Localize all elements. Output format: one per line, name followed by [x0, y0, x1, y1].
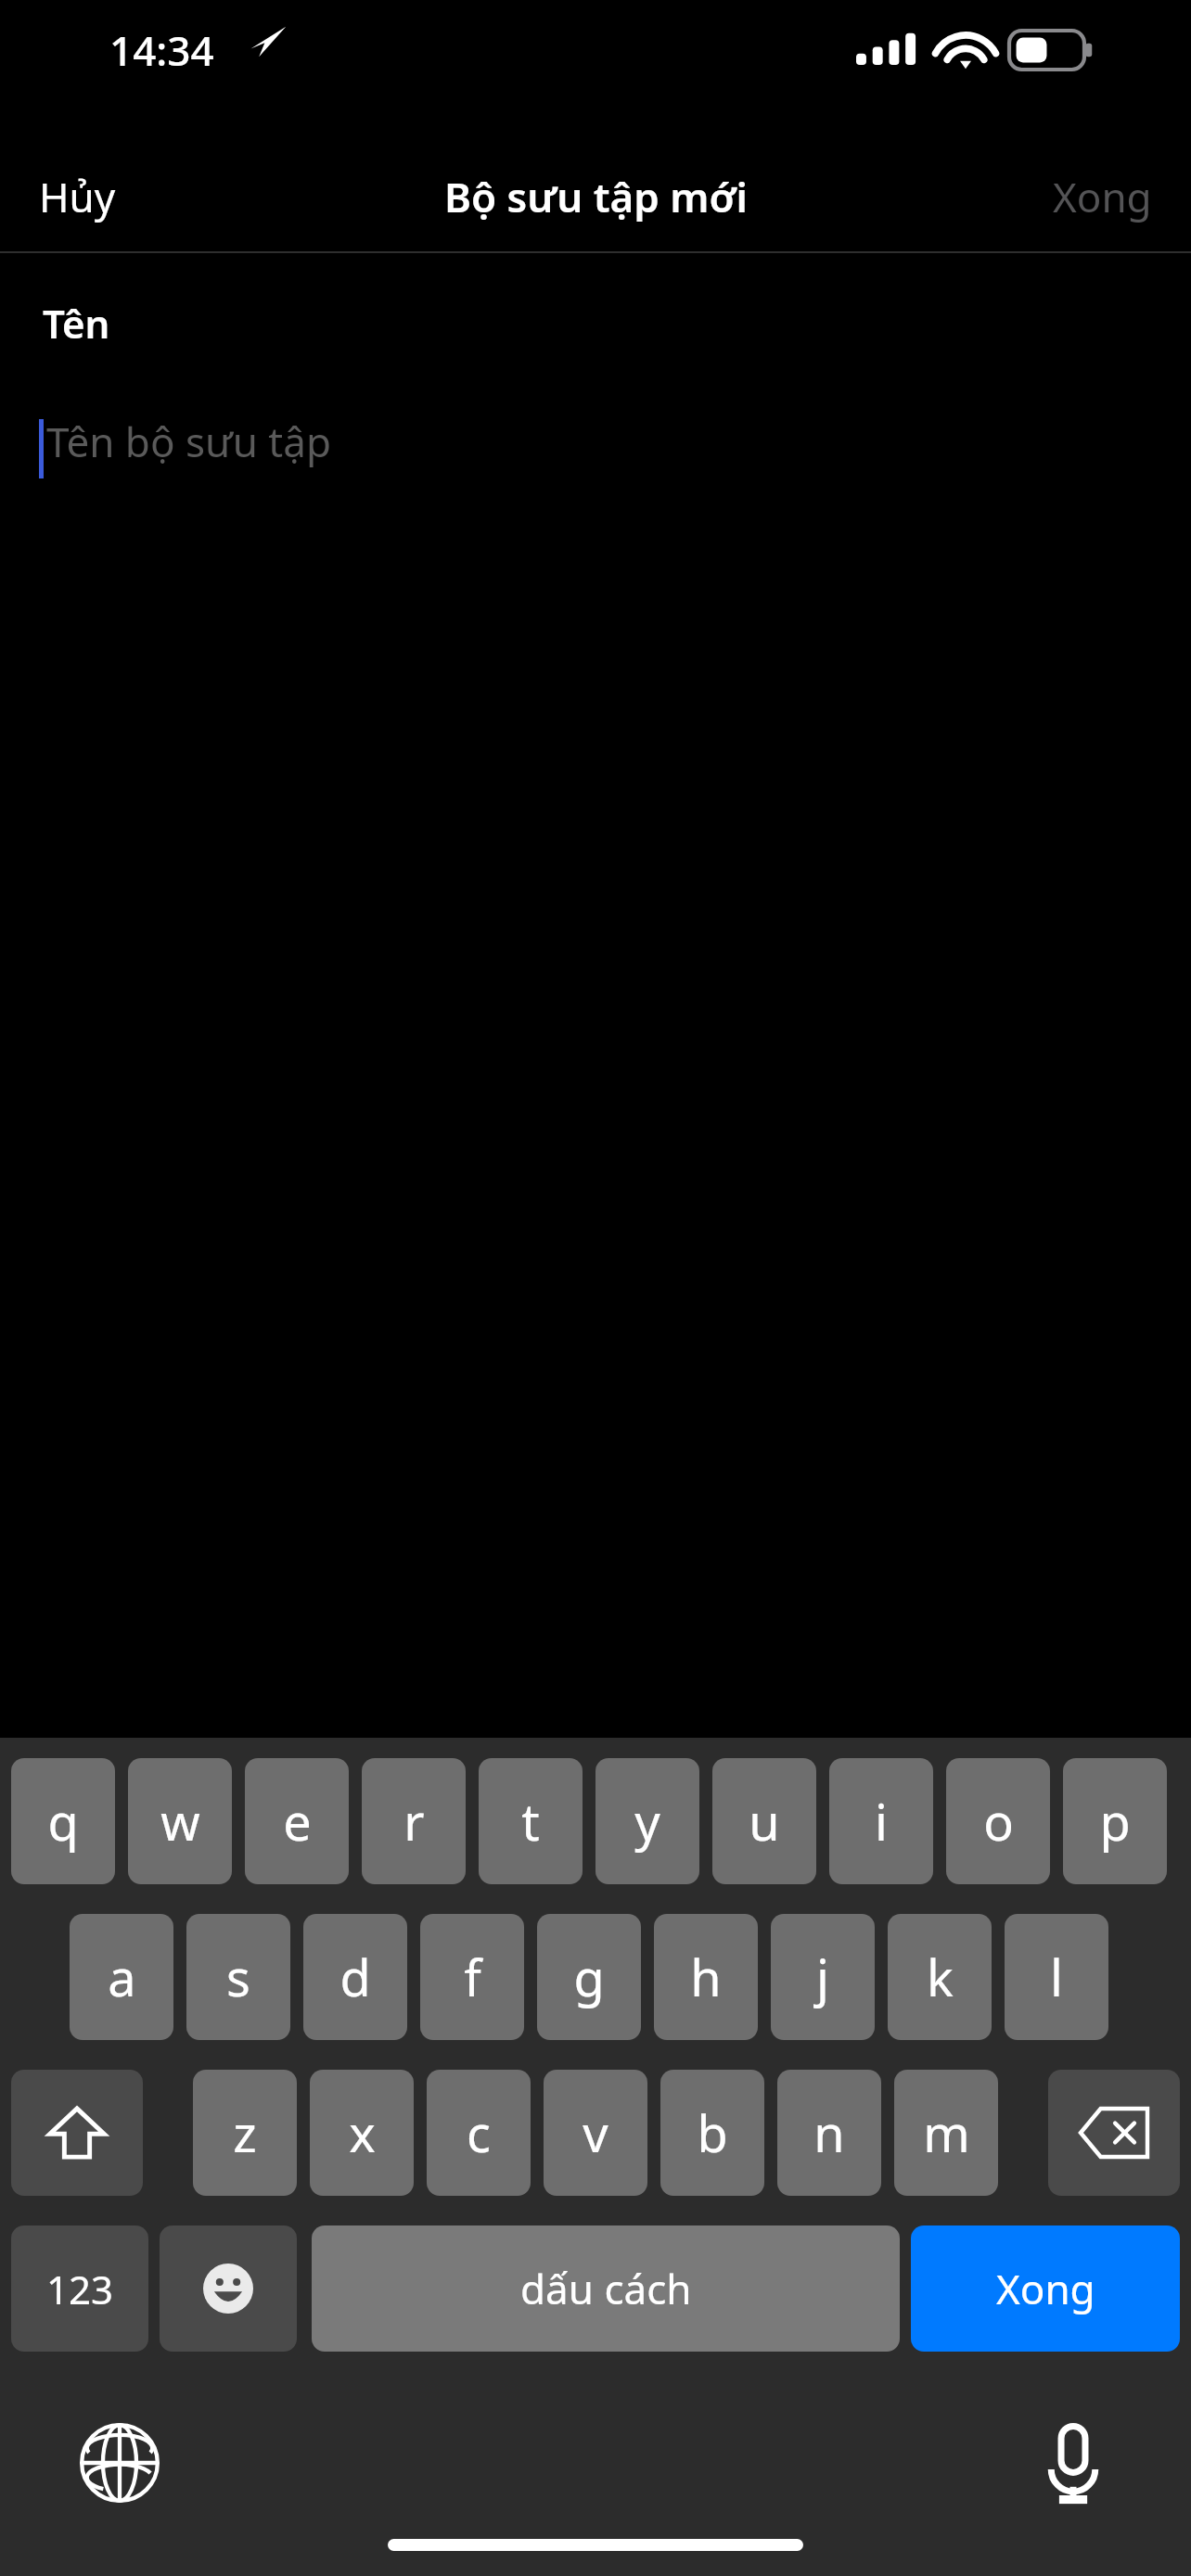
staticText: w [160, 1787, 200, 1855]
staticText: 14:34 [109, 22, 214, 78]
staticText: Tên bộ sưu tập [46, 414, 331, 469]
button[interactable]: Xong [1021, 152, 1184, 241]
staticText: f [464, 1943, 481, 2011]
staticText: b [697, 2098, 728, 2167]
button[interactable]: h [654, 1914, 758, 2040]
staticText: Xong [996, 2261, 1095, 2316]
button[interactable]: m [894, 2070, 998, 2196]
button[interactable]: w [128, 1758, 232, 1884]
button[interactable]: Backspace [1048, 2070, 1180, 2196]
staticText: u [749, 1787, 780, 1855]
staticText: v [583, 2098, 608, 2167]
staticText: Hủy [39, 169, 116, 224]
staticText: e [283, 1787, 312, 1855]
button[interactable]: Dictation [1017, 2406, 1130, 2519]
button[interactable]: t [479, 1758, 583, 1884]
staticText: s [226, 1943, 250, 2011]
staticText: c [467, 2098, 491, 2167]
staticText: o [983, 1787, 1014, 1855]
button[interactable]: r [362, 1758, 466, 1884]
staticText: x [349, 2098, 376, 2167]
staticText: t [521, 1787, 540, 1855]
button[interactable]: v [544, 2070, 647, 2196]
button[interactable]: c [427, 2070, 531, 2196]
button[interactable]: dấu cách [312, 2225, 900, 2352]
button[interactable]: Shift [11, 2070, 143, 2196]
staticText: dấu cách [520, 2261, 692, 2316]
button[interactable]: Xong [911, 2225, 1180, 2352]
button[interactable]: z [193, 2070, 297, 2196]
button[interactable]: Tên bộ sưu tập [0, 389, 1191, 510]
button[interactable]: o [946, 1758, 1050, 1884]
staticText: y [634, 1787, 660, 1855]
staticText: i [875, 1787, 888, 1855]
staticText: Bộ sưu tập mới [444, 169, 748, 224]
button[interactable]: Hủy [7, 152, 147, 241]
button[interactable]: f [420, 1914, 524, 2040]
button[interactable]: k [888, 1914, 992, 2040]
button[interactable]: s [186, 1914, 290, 2040]
button[interactable]: i [829, 1758, 933, 1884]
button[interactable]: q [11, 1758, 115, 1884]
button[interactable]: u [712, 1758, 816, 1884]
button[interactable]: y [595, 1758, 699, 1884]
button[interactable]: Emoji [160, 2225, 297, 2352]
staticText: a [108, 1943, 136, 2011]
button[interactable]: Change keyboard language [63, 2406, 176, 2519]
button[interactable]: 123 [11, 2225, 148, 2352]
staticText: p [1099, 1787, 1131, 1855]
staticText: g [573, 1943, 605, 2011]
staticText: z [233, 2098, 257, 2167]
button[interactable]: j [771, 1914, 875, 2040]
staticText: Tên [43, 297, 110, 350]
staticText: l [1050, 1943, 1063, 2011]
button[interactable]: a [70, 1914, 173, 2040]
button[interactable]: p [1063, 1758, 1167, 1884]
staticText: r [403, 1787, 425, 1855]
staticText: m [923, 2098, 970, 2167]
staticText: q [47, 1787, 79, 1855]
button[interactable]: e [245, 1758, 349, 1884]
button[interactable]: g [537, 1914, 641, 2040]
staticText: Xong [1053, 169, 1152, 224]
staticText: h [690, 1943, 722, 2011]
staticText: 123 [46, 2263, 114, 2315]
button[interactable]: x [310, 2070, 414, 2196]
button[interactable]: l [1005, 1914, 1108, 2040]
button[interactable]: d [303, 1914, 407, 2040]
staticText: k [927, 1943, 954, 2011]
button[interactable]: n [777, 2070, 881, 2196]
button[interactable]: b [660, 2070, 764, 2196]
staticText: j [816, 1943, 829, 2011]
staticText: n [813, 2098, 845, 2167]
staticText: d [339, 1943, 371, 2011]
